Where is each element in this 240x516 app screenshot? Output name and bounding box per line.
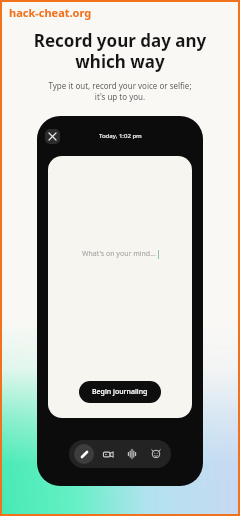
button[interactable]: Record voice [122, 444, 142, 464]
button[interactable]: Add media [98, 444, 118, 464]
staticText: Begin journaling [92, 387, 148, 397]
staticText: Record your day any which way [8, 29, 232, 73]
button[interactable]: Write text [74, 444, 94, 464]
staticText: hack-cheat.org [9, 5, 92, 20]
staticText: Type it out, record your voice or selfie… [12, 80, 228, 102]
button[interactable]: Begin journaling [79, 381, 161, 403]
button[interactable]: Take selfie [146, 444, 166, 464]
button[interactable]: Close [45, 129, 60, 144]
staticText: Today, 1:02 pm [99, 132, 142, 140]
staticText: What's on your mind... [82, 249, 156, 259]
